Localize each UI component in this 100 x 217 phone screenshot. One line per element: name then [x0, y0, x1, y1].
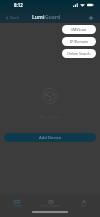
staticText: Guard: [45, 14, 61, 21]
staticText: Lumi: [32, 14, 45, 21]
button[interactable]: Me: [67, 196, 100, 208]
staticText: 8:12: [14, 2, 23, 8]
button[interactable]: Home: [0, 196, 34, 208]
staticText: Add Device: [39, 135, 62, 141]
staticText: Back: [10, 15, 20, 21]
staticText: Smart Scanner: [40, 204, 61, 208]
staticText: Me: [81, 204, 86, 208]
other: Back: [5, 16, 9, 20]
button[interactable]: IP/Domain: [62, 37, 96, 46]
staticText: SMSScan: [71, 27, 87, 32]
button[interactable]: Add Device: [4, 133, 96, 142]
button[interactable]: Smart Scanner: [34, 196, 67, 208]
staticText: Online Search: [67, 51, 91, 56]
button[interactable]: SMSScan: [62, 25, 96, 34]
staticText: IP/Domain: [70, 39, 89, 44]
button[interactable]: Add: [86, 13, 95, 22]
button[interactable]: Back: [5, 15, 20, 21]
staticText: Home: [13, 204, 22, 208]
button[interactable]: Online Search: [62, 49, 96, 58]
